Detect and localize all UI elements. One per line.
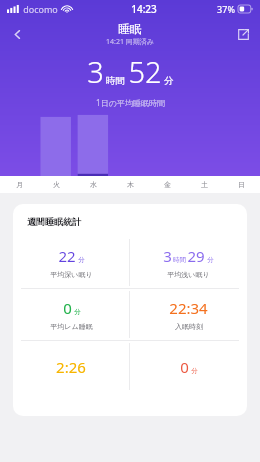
staticText: 14:23 [131,2,157,16]
button[interactable]: 月 [0,176,38,193]
staticText: 分 [191,367,198,375]
button[interactable]: Back [0,17,34,51]
staticText: 睡眠 [118,21,142,36]
button[interactable]: 木 [112,176,149,193]
button[interactable]: Share [226,17,260,51]
staticText: 金 [164,180,171,189]
staticText: 0 [63,298,72,318]
button[interactable]: 金 [149,176,186,193]
staticText: 火 [53,180,60,189]
button[interactable]: 3 [130,237,247,288]
staticText: 入眠時刻 [175,322,203,331]
staticText: 月 [16,180,23,189]
staticText: 平均レム睡眠 [50,322,93,331]
staticText: 週間睡眠統計 [27,216,81,227]
staticText: 分 [74,308,81,316]
staticText: 3 [87,52,104,91]
staticText: 3 [163,246,172,266]
staticText: 分 [207,256,214,264]
button[interactable]: 22 [13,237,129,288]
button[interactable]: 火 [38,176,75,193]
staticText: 22:34 [169,298,208,318]
button[interactable]: 2:26 [13,341,129,392]
staticText: 時間 [173,256,186,264]
staticText: 14:21 同期済み [106,37,154,47]
staticText: 1日の平均睡眠時間 [96,97,165,108]
staticText: 分 [164,75,174,87]
button[interactable]: 日 [223,176,260,193]
staticText: 土 [201,180,208,189]
button[interactable]: 0 [130,341,247,392]
staticText: 水 [90,180,97,189]
staticText: 平均深い眠り [50,270,93,279]
staticText: 平均浅い眠り [167,270,210,279]
staticText: 29 [187,246,205,266]
button[interactable]: 0 [13,289,129,340]
button[interactable]: 土 [186,176,223,193]
staticText: 0 [180,357,189,377]
staticText: 22 [58,246,76,266]
button[interactable]: 水 [75,176,112,193]
staticText: 52 [128,52,162,91]
staticText: docomo [23,3,58,15]
staticText: 2:26 [56,357,86,377]
button[interactable]: 22:34 [130,289,247,340]
staticText: 37% [217,3,235,15]
staticText: 日 [238,180,245,189]
staticText: 木 [127,180,134,189]
staticText: 時間 [106,75,125,87]
staticText: 分 [78,256,85,264]
